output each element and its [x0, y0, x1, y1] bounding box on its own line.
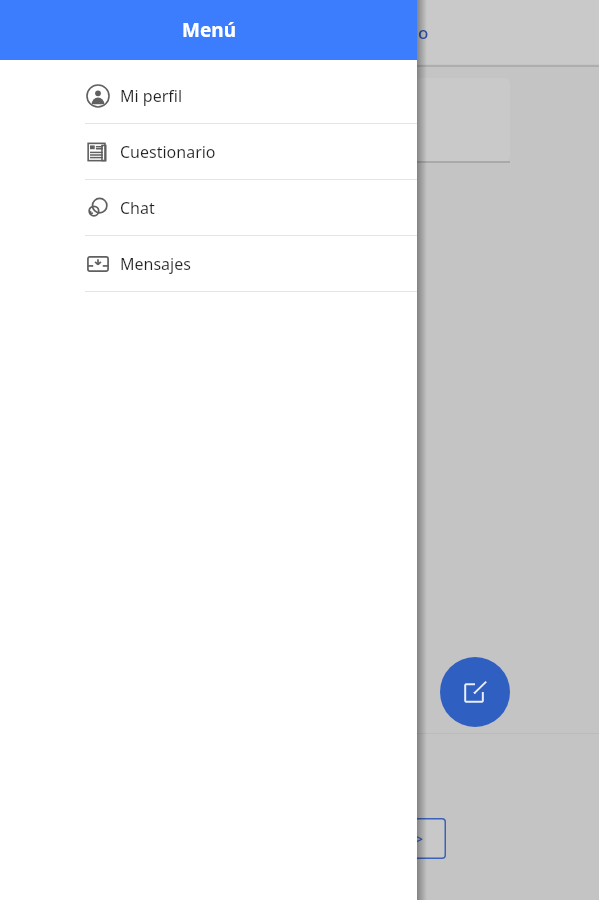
- button[interactable]: Compose: [440, 657, 510, 727]
- staticText: Mensajes: [120, 253, 191, 275]
- staticText: Cuestionario: [120, 141, 216, 163]
- button[interactable]: Chat: [0, 180, 417, 235]
- staticText: o: [418, 21, 429, 44]
- staticText: Chat: [120, 197, 155, 219]
- button[interactable]: [160, 78, 510, 162]
- button[interactable]: Cuestionario: [0, 124, 417, 179]
- button[interactable]: Mi perfil: [0, 68, 417, 123]
- button[interactable]: >: [330, 818, 446, 859]
- button[interactable]: Mensajes: [0, 236, 417, 291]
- staticText: Mi perfil: [120, 85, 183, 107]
- staticText: Menú: [182, 17, 236, 43]
- staticText: >: [414, 828, 424, 850]
